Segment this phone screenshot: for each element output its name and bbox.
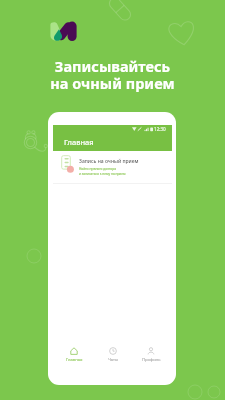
staticText: Записывайтесь на очный прием [0, 56, 225, 93]
staticText: 12:30 [154, 126, 166, 132]
staticText: Главная [64, 137, 94, 147]
staticText: Найти нужного доктора и записаться к нем… [79, 167, 126, 176]
staticText: Запись на очный прием [79, 158, 139, 165]
button[interactable]: Профиль [134, 345, 168, 365]
staticText: Профиль [142, 357, 161, 363]
staticText: Чаты [108, 357, 119, 363]
staticText: Главная [66, 357, 83, 363]
button[interactable]: Главная [57, 345, 91, 365]
button[interactable]: Запись на очный прием [53, 151, 172, 184]
button[interactable]: Чаты [96, 345, 130, 365]
